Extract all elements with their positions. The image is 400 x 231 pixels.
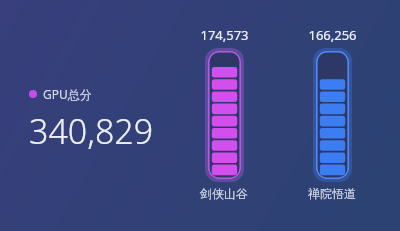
staticText: 剑侠山谷 — [200, 186, 248, 201]
button[interactable]: 174,573 — [176, 26, 272, 201]
button[interactable]: GPU score indicator — [29, 86, 154, 154]
button[interactable]: 166,256 — [284, 26, 380, 201]
staticText: 禅院悟道 — [308, 186, 356, 201]
staticText: GPU总分 — [43, 86, 92, 102]
staticText: 174,573 — [200, 26, 249, 44]
other: GPU score indicator — [29, 90, 37, 98]
staticText: 340,829 — [29, 108, 154, 154]
staticText: 166,256 — [308, 26, 357, 44]
